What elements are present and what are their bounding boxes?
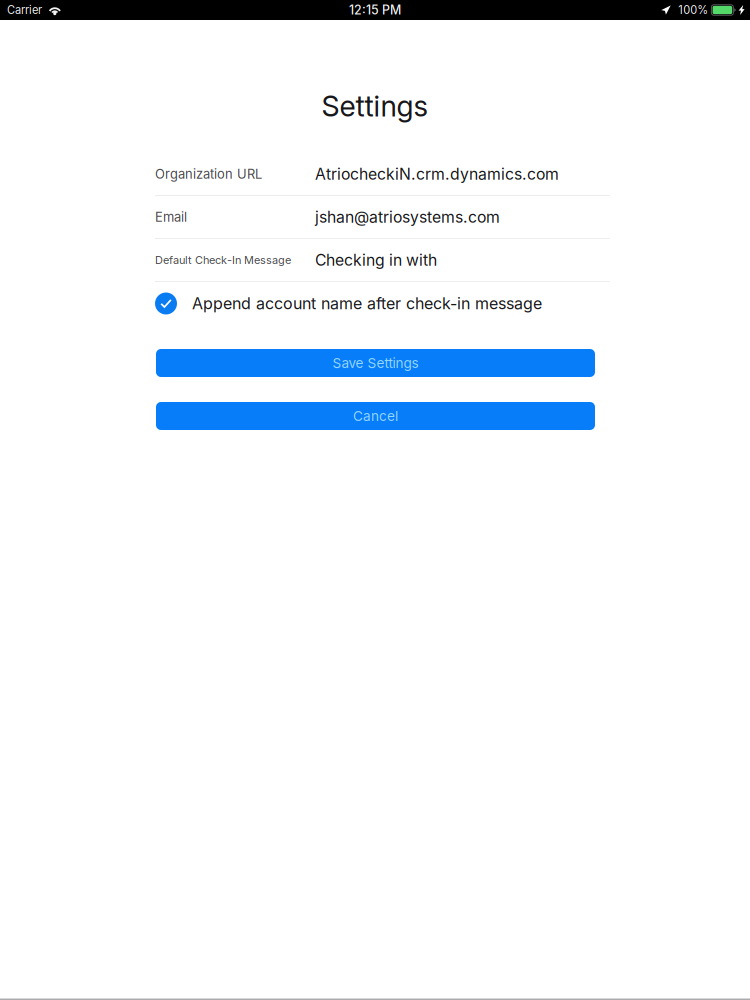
- staticText: Email: [155, 209, 187, 225]
- staticText: Append account name after check-in messa…: [192, 294, 542, 313]
- staticText: Default Check-In Message: [155, 253, 291, 267]
- button[interactable]: Cancel: [156, 402, 595, 430]
- staticText: Checking in with: [315, 250, 437, 269]
- staticText: Save Settings: [332, 355, 418, 371]
- staticText: Settings: [321, 89, 428, 123]
- button[interactable]: Organization URL: [155, 153, 610, 196]
- button[interactable]: Default Check-In Message: [155, 239, 610, 282]
- staticText: Organization URL: [155, 166, 262, 182]
- staticText: jshan@atriosystems.com: [315, 207, 500, 226]
- staticText: 12:15 PM: [349, 2, 401, 17]
- button[interactable]: Append account name after check-in messa…: [155, 282, 610, 325]
- staticText: Cancel: [353, 408, 398, 424]
- button[interactable]: Email: [155, 196, 610, 239]
- staticText: 100%: [678, 3, 708, 17]
- staticText: Carrier: [7, 3, 42, 17]
- staticText: AtriocheckiN.crm.dynamics.com: [315, 164, 559, 183]
- button[interactable]: Save Settings: [156, 349, 595, 377]
